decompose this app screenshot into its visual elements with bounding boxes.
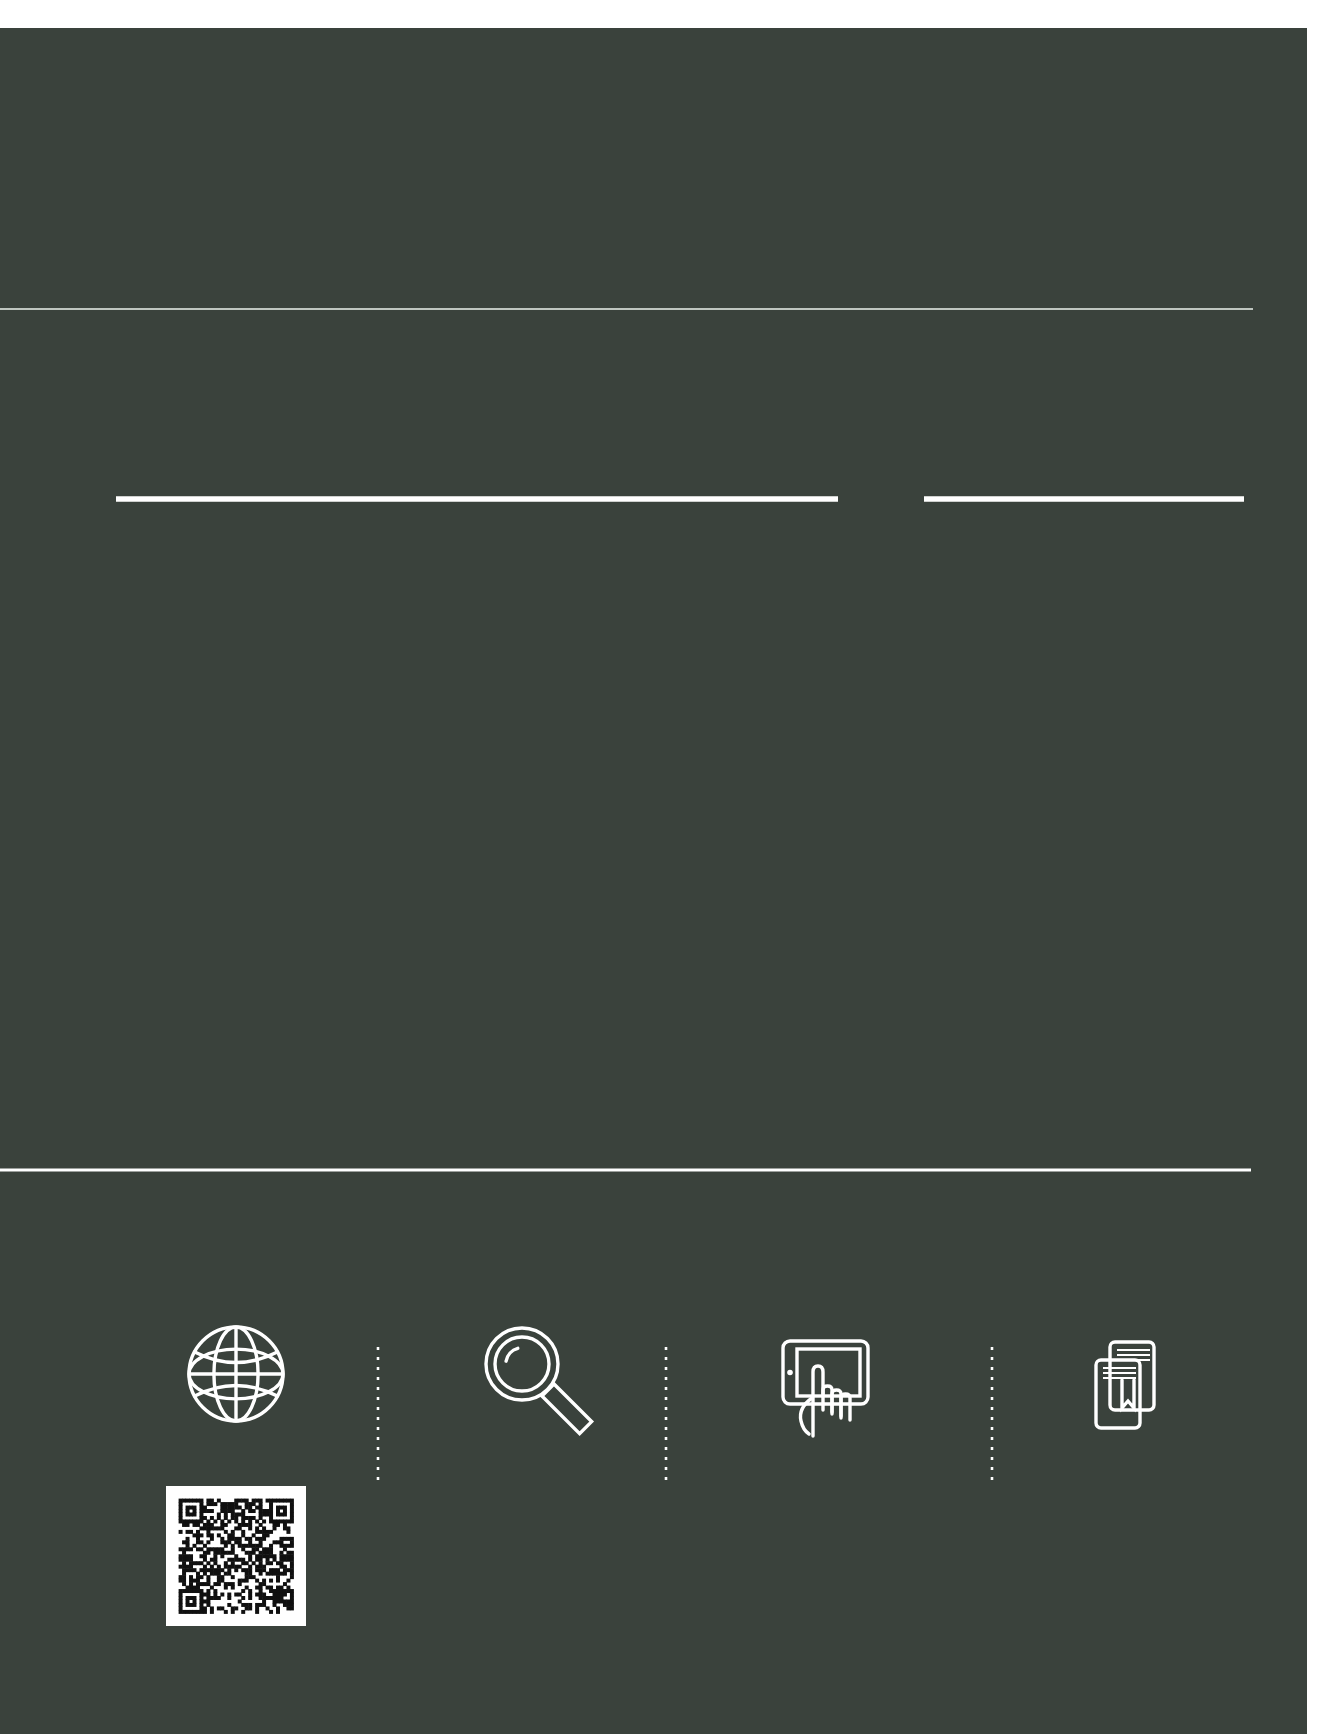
button[interactable]: Library <box>1045 1305 1205 1465</box>
button[interactable]: Interactive <box>745 1292 905 1452</box>
button[interactable]: Web <box>166 1304 306 1444</box>
button[interactable]: QR code <box>166 1486 306 1626</box>
button[interactable]: Search <box>452 1294 592 1434</box>
